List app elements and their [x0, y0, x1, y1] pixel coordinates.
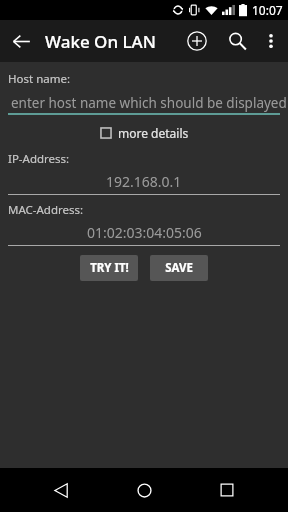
- staticText: IP-Address:: [8, 151, 70, 167]
- staticText: enter host name which should be displaye…: [11, 94, 287, 112]
- button[interactable]: TRY IT!: [80, 255, 138, 281]
- button[interactable]: more details: [96, 123, 193, 143]
- button[interactable]: enter host name which should be displaye…: [0, 92, 288, 113]
- button[interactable]: Home: [122, 468, 166, 512]
- button[interactable]: 01:02:03:04:05:06: [0, 221, 288, 243]
- button[interactable]: Add: [177, 21, 217, 61]
- button[interactable]: More options: [257, 27, 285, 55]
- staticText: 192.168.0.1: [106, 172, 182, 191]
- staticText: more details: [118, 125, 189, 141]
- button[interactable]: Search: [217, 21, 257, 61]
- button[interactable]: Back: [39, 468, 83, 512]
- button[interactable]: 192.168.0.1: [0, 170, 288, 192]
- staticText: Host name:: [8, 71, 71, 87]
- staticText: MAC-Address:: [8, 202, 84, 218]
- staticText: SAVE: [165, 260, 193, 276]
- staticText: Wake On LAN: [45, 30, 156, 53]
- staticText: 01:02:03:04:05:06: [87, 223, 202, 242]
- button[interactable]: Recent apps: [205, 468, 249, 512]
- button[interactable]: Back: [0, 20, 42, 62]
- staticText: 10:07: [252, 2, 283, 18]
- button[interactable]: SAVE: [150, 255, 208, 281]
- staticText: TRY IT!: [90, 260, 129, 276]
